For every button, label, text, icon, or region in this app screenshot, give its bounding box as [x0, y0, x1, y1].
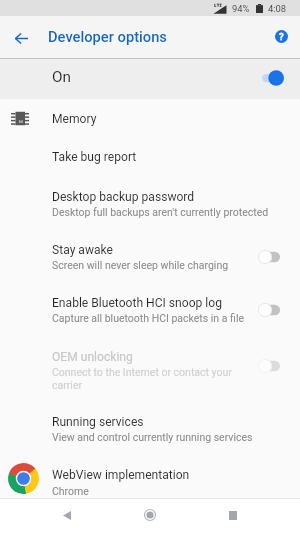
staticText: Desktop backup password [52, 190, 195, 204]
staticText: Memory [52, 112, 97, 126]
button[interactable]: Back [54, 502, 80, 528]
staticText: carrier [52, 379, 83, 391]
button[interactable] [0, 455, 300, 502]
staticText: WebView implementation [52, 468, 190, 482]
button[interactable]: On [0, 59, 300, 99]
staticText: Developer options [48, 28, 167, 45]
button[interactable] [0, 99, 300, 137]
staticText: Take bug report [52, 150, 137, 164]
staticText: Stay awake [52, 243, 114, 257]
button[interactable] [0, 137, 300, 176]
staticText: ? [279, 31, 284, 42]
staticText: 4:08 [268, 3, 287, 14]
button[interactable] [0, 337, 300, 402]
staticText: Enable Bluetooth HCI snoop log [52, 296, 223, 310]
button[interactable]: Navigate up [8, 25, 34, 51]
button[interactable] [0, 176, 300, 230]
staticText: Screen will never sleep while charging [52, 259, 229, 271]
staticText: View and control currently running servi… [52, 431, 253, 443]
button[interactable] [0, 402, 300, 455]
button[interactable] [0, 230, 300, 283]
staticText: Desktop full backups aren't currently pr… [52, 206, 269, 218]
button[interactable]: Help [269, 24, 294, 49]
staticText: On [52, 68, 71, 86]
button[interactable]: Recent apps [220, 502, 246, 528]
button[interactable]: Home [137, 502, 163, 528]
staticText: OEM unlocking [52, 350, 133, 364]
staticText: Connect to the Internet or contact your [52, 366, 232, 378]
staticText: Chrome [52, 485, 89, 497]
staticText: Capture all bluetooth HCI packets in a f… [52, 312, 245, 324]
staticText: 94% [232, 3, 250, 14]
button[interactable] [0, 283, 300, 337]
staticText: Running services [52, 415, 144, 429]
